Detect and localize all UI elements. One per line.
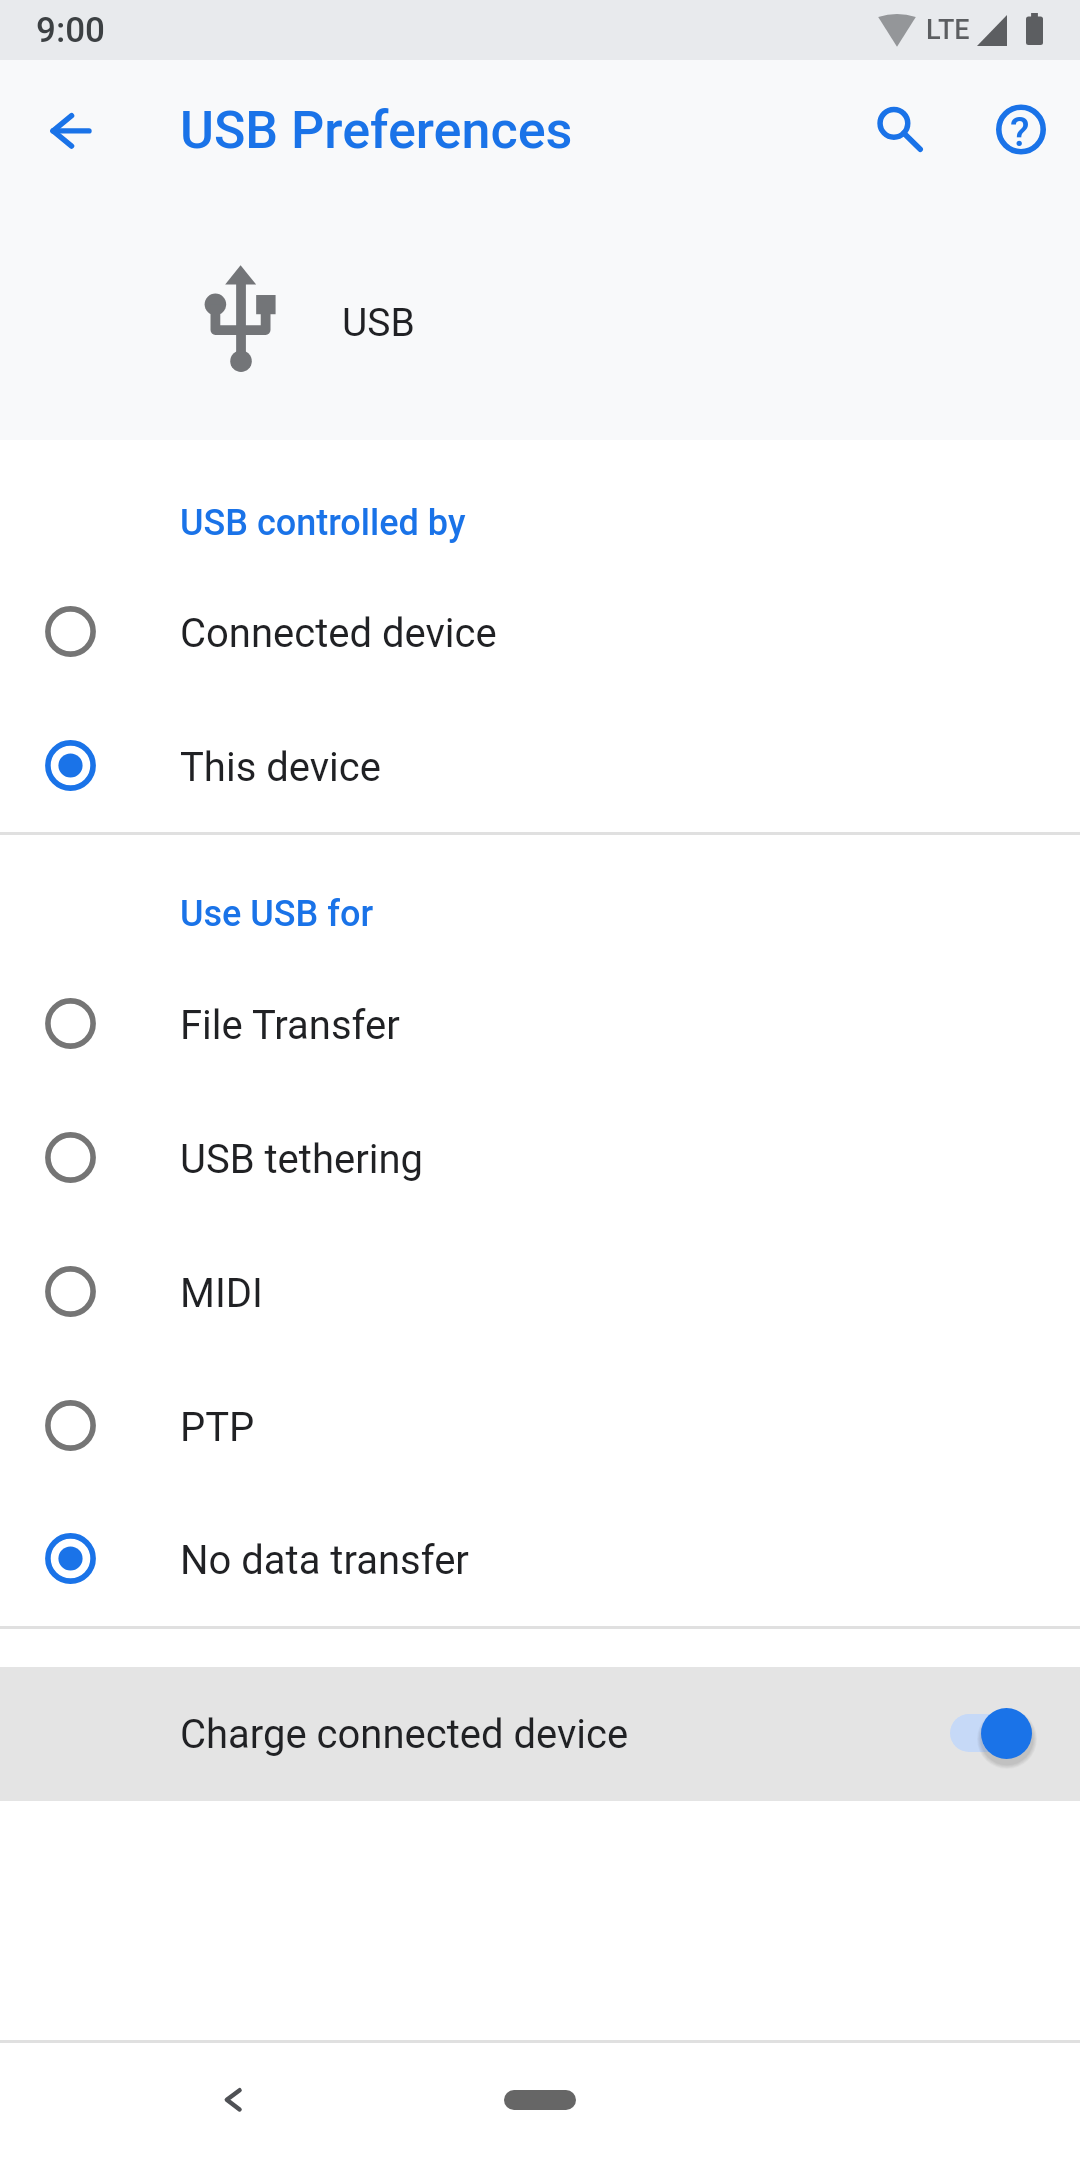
staticText: No data transfer	[180, 1537, 469, 1584]
staticText: LTE	[926, 14, 970, 46]
staticText: Connected device	[180, 610, 497, 657]
staticText: PTP	[180, 1404, 255, 1451]
button[interactable]: Help	[966, 72, 1074, 180]
staticText: 9:00	[36, 10, 105, 51]
button[interactable]: USB tethering	[0, 1090, 1080, 1224]
staticText: MIDI	[180, 1270, 263, 1317]
staticText: File Transfer	[180, 1002, 400, 1049]
button[interactable]: Home	[504, 2090, 576, 2110]
button[interactable]: Navigate up	[22, 79, 118, 175]
staticText: USB	[342, 300, 415, 346]
button[interactable]: No data transfer	[0, 1491, 1080, 1625]
staticText: USB tethering	[180, 1136, 423, 1183]
button[interactable]: File Transfer	[0, 956, 1080, 1090]
staticText: USB Preferences	[180, 100, 573, 161]
button[interactable]: Search	[845, 72, 953, 180]
staticText: ?	[1010, 109, 1030, 156]
staticText: Use USB for	[180, 893, 374, 935]
staticText: Charge connected device	[180, 1711, 629, 1758]
button[interactable]: This device	[0, 698, 1080, 832]
button[interactable]: MIDI	[0, 1224, 1080, 1358]
button[interactable]: Connected device	[0, 564, 1080, 698]
staticText: This device	[180, 744, 381, 791]
staticText: USB controlled by	[180, 502, 466, 544]
button[interactable]: Back	[186, 2055, 276, 2145]
button[interactable]: Charge connected device	[0, 1667, 1080, 1801]
button[interactable]: PTP	[0, 1358, 1080, 1492]
